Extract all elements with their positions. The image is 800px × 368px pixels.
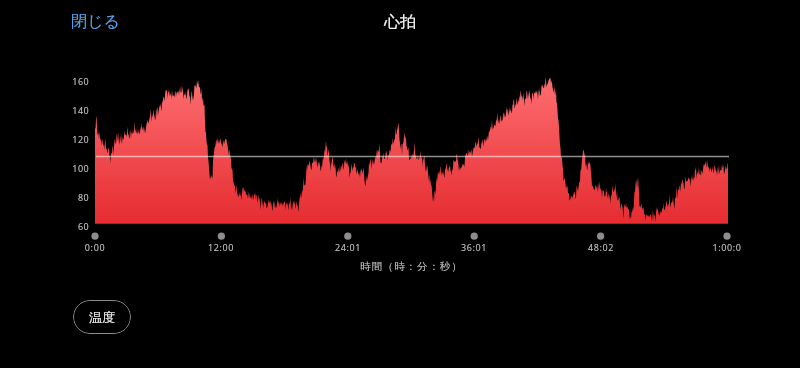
staticText: 100	[59, 162, 89, 174]
button[interactable]: 閉じる	[62, 6, 129, 38]
staticText: 温度	[89, 309, 115, 325]
staticText: 12:00	[191, 241, 251, 253]
staticText: 160	[59, 75, 89, 87]
staticText: 140	[59, 104, 89, 116]
staticText: 0:00	[65, 241, 125, 253]
staticText: 48:02	[571, 241, 631, 253]
staticText: 120	[59, 133, 89, 145]
staticText: 36:01	[444, 241, 504, 253]
staticText: 24:01	[318, 241, 378, 253]
staticText: 心拍	[384, 12, 416, 32]
staticText: 80	[59, 191, 89, 203]
staticText: 1:00:0	[697, 241, 757, 253]
staticText: 時間（時：分：秒）	[360, 260, 463, 273]
staticText: 60	[59, 220, 89, 232]
staticText: 閉じる	[71, 12, 120, 32]
button[interactable]: 温度	[73, 300, 131, 334]
